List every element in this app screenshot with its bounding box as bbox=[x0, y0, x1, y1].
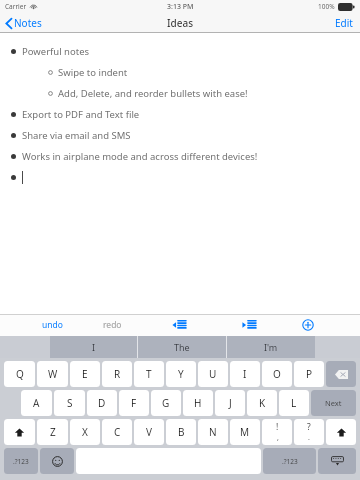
button[interactable]: Emoji bbox=[40, 448, 74, 474]
staticText: ! bbox=[276, 421, 279, 433]
staticText: T bbox=[146, 367, 152, 381]
button[interactable]: X bbox=[70, 419, 100, 445]
staticText: I bbox=[243, 367, 247, 381]
button[interactable]: Decrease indent bbox=[166, 318, 192, 333]
button[interactable]: Add bullet bbox=[294, 317, 322, 333]
button[interactable]: Backspace bbox=[326, 361, 356, 387]
staticText: I'm bbox=[264, 341, 278, 353]
button[interactable]: Powerful notes bbox=[0, 33, 360, 314]
staticText: L bbox=[291, 396, 297, 410]
staticText: V bbox=[146, 425, 152, 439]
button[interactable]: Hide keyboard bbox=[318, 448, 356, 474]
staticText: P bbox=[306, 367, 313, 381]
button[interactable]: .?123 bbox=[263, 448, 316, 474]
staticText: N bbox=[209, 425, 217, 439]
button[interactable]: N bbox=[198, 419, 228, 445]
staticText: . bbox=[308, 433, 310, 443]
staticText: E bbox=[82, 367, 88, 381]
button[interactable]: Shift bbox=[4, 419, 35, 445]
button[interactable]: .?123 bbox=[4, 448, 38, 474]
button[interactable]: T bbox=[134, 361, 164, 387]
button[interactable]: I bbox=[230, 361, 260, 387]
button[interactable]: redo bbox=[95, 316, 130, 334]
staticText: Swipe to indent bbox=[58, 66, 128, 79]
button[interactable]: C bbox=[102, 419, 132, 445]
staticText: , bbox=[277, 433, 279, 443]
button[interactable]: P bbox=[294, 361, 324, 387]
button[interactable]: I'm bbox=[227, 336, 315, 358]
staticText: O bbox=[273, 367, 281, 381]
button[interactable]: K bbox=[247, 390, 277, 416]
staticText: U bbox=[209, 367, 217, 381]
staticText: Edit bbox=[335, 16, 353, 30]
staticText: Works in airplane mode and across differ… bbox=[22, 150, 258, 163]
staticText: Powerful notes bbox=[22, 45, 90, 58]
button[interactable]: G bbox=[151, 390, 181, 416]
staticText: X bbox=[82, 425, 88, 439]
staticText: Export to PDF and Text file bbox=[22, 108, 140, 121]
staticText: Carrier bbox=[5, 2, 27, 11]
staticText: .?123 bbox=[282, 457, 298, 466]
staticText: Q bbox=[16, 367, 24, 381]
staticText: redo bbox=[103, 319, 122, 331]
staticText: S bbox=[67, 396, 73, 410]
staticText: Next bbox=[325, 398, 342, 408]
button[interactable]: F bbox=[119, 390, 149, 416]
staticText: W bbox=[48, 367, 58, 381]
staticText: Add, Delete, and reorder bullets with ea… bbox=[58, 87, 248, 100]
staticText: D bbox=[98, 396, 106, 410]
staticText: B bbox=[178, 425, 185, 439]
staticText: K bbox=[259, 396, 266, 410]
button[interactable]: Z bbox=[37, 419, 68, 445]
button[interactable]: Edit bbox=[325, 13, 360, 33]
button[interactable]: Notes bbox=[0, 13, 50, 33]
staticText: Notes bbox=[14, 16, 42, 30]
staticText: F bbox=[131, 396, 137, 410]
staticText: .?123 bbox=[13, 457, 29, 466]
button[interactable]: L bbox=[279, 390, 309, 416]
button[interactable]: ! bbox=[262, 419, 292, 445]
staticText: A bbox=[33, 396, 40, 410]
staticText: J bbox=[229, 396, 232, 410]
button[interactable]: The bbox=[138, 336, 226, 358]
button[interactable]: W bbox=[37, 361, 68, 387]
button[interactable]: E bbox=[70, 361, 100, 387]
button[interactable]: I bbox=[50, 336, 137, 358]
staticText: undo bbox=[42, 319, 63, 331]
button[interactable]: undo bbox=[34, 316, 71, 334]
button[interactable]: S bbox=[54, 390, 85, 416]
button[interactable]: Y bbox=[166, 361, 196, 387]
staticText: Z bbox=[50, 425, 56, 439]
button[interactable]: Q bbox=[4, 361, 35, 387]
staticText: R bbox=[114, 367, 121, 381]
button[interactable]: Next bbox=[311, 390, 356, 416]
button[interactable]: R bbox=[102, 361, 132, 387]
staticText: Y bbox=[178, 367, 184, 381]
button[interactable]: H bbox=[183, 390, 213, 416]
staticText: H bbox=[194, 396, 202, 410]
button[interactable]: B bbox=[166, 419, 196, 445]
staticText: Ideas bbox=[167, 16, 194, 30]
staticText: M bbox=[240, 425, 250, 439]
staticText: The bbox=[174, 341, 190, 353]
staticText: 100% bbox=[318, 2, 335, 11]
button[interactable]: ? bbox=[294, 419, 324, 445]
staticText: G bbox=[162, 396, 170, 410]
button[interactable]: A bbox=[21, 390, 52, 416]
button[interactable]: J bbox=[215, 390, 245, 416]
button[interactable]: V bbox=[134, 419, 164, 445]
staticText: 3:13 PM bbox=[167, 2, 194, 12]
staticText: C bbox=[114, 425, 121, 439]
button[interactable]: D bbox=[87, 390, 117, 416]
button[interactable]: Shift bbox=[326, 419, 356, 445]
button[interactable]: M bbox=[230, 419, 260, 445]
staticText: ? bbox=[307, 421, 311, 433]
staticText: Share via email and SMS bbox=[22, 129, 131, 142]
button[interactable]: Increase indent bbox=[236, 318, 262, 333]
button[interactable]: O bbox=[262, 361, 292, 387]
button[interactable]: U bbox=[198, 361, 228, 387]
staticText: I bbox=[92, 341, 96, 353]
